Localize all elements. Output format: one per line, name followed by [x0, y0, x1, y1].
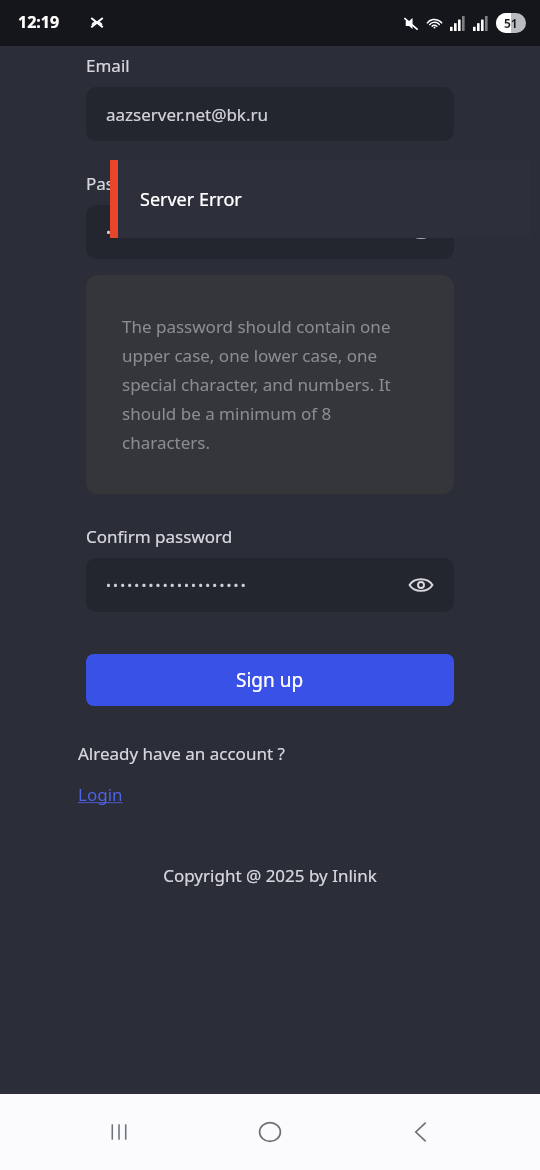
button[interactable]: Sign up	[86, 654, 454, 706]
staticText: Password	[86, 172, 163, 195]
button[interactable]: Login	[78, 783, 123, 806]
staticText: ••••••••••••••••••••	[106, 223, 248, 241]
staticText: ••••••••••••••••••••	[106, 576, 248, 594]
button[interactable]: aazserver.net@bk.ru	[86, 87, 454, 141]
button[interactable]: Home	[238, 1100, 302, 1164]
staticText: 12:19	[18, 11, 60, 33]
staticText: Already have an account ?	[78, 742, 285, 765]
staticText: Confirm password	[86, 525, 233, 548]
button[interactable]: Show password	[404, 215, 438, 249]
button[interactable]: Back	[389, 1100, 453, 1164]
staticText: The password should contain one upper ca…	[122, 315, 418, 454]
staticText: Email	[86, 54, 130, 77]
staticText: aazserver.net@bk.ru	[106, 103, 269, 126]
button[interactable]: ••••••••••••••••••••	[86, 205, 454, 259]
staticText: 51	[504, 15, 518, 31]
staticText: Login	[78, 783, 123, 806]
button[interactable]: Show password	[404, 568, 438, 602]
staticText: Sign up	[236, 667, 304, 693]
button[interactable]: Server Error	[110, 160, 530, 238]
staticText: Server Error	[140, 187, 242, 212]
button[interactable]: Recents	[87, 1100, 151, 1164]
button[interactable]: ••••••••••••••••••••	[86, 558, 454, 612]
staticText: Copyright @ 2025 by Inlink	[0, 864, 540, 887]
